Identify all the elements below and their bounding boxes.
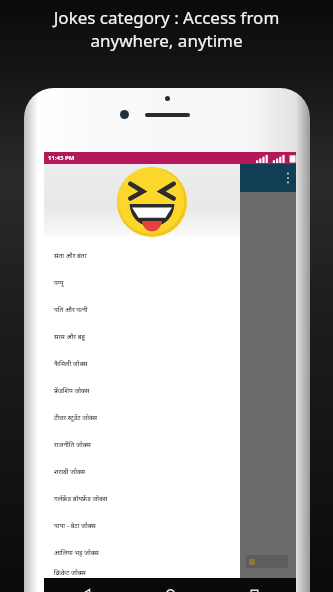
staticText: राजनीति जोक्स bbox=[54, 440, 91, 449]
button[interactable]: शराबी जोक्स bbox=[44, 458, 240, 485]
button[interactable]: पापा - बेटा जोक्स bbox=[44, 512, 240, 539]
button[interactable]: संता और बंता bbox=[44, 242, 240, 269]
staticText: शराबी जोक्स bbox=[54, 467, 86, 476]
staticText: टीचर स्टूडेंट जोक्स bbox=[54, 413, 98, 422]
button[interactable]: पति और पत्नी bbox=[44, 296, 240, 323]
button[interactable]: फैमिली जोक्स bbox=[44, 350, 240, 377]
staticText: 11:43 PM bbox=[48, 154, 75, 162]
staticText: पापा - बेटा जोक्स bbox=[54, 521, 96, 530]
button[interactable]: गर्लफ्रेंड बॉयफ्रेंड जोक्स bbox=[44, 485, 240, 512]
button[interactable]: फ्रेंडशिप जोक्स bbox=[44, 377, 240, 404]
staticText: सास और बहू bbox=[54, 332, 86, 341]
button[interactable]: Back bbox=[44, 578, 128, 592]
staticText: फ्रेंडशिप जोक्स bbox=[54, 386, 90, 395]
button[interactable]: Recents bbox=[212, 578, 296, 592]
staticText: गर्लफ्रेंड बॉयफ्रेंड जोक्स bbox=[54, 494, 108, 503]
staticText: आलिया भट्ट जोक्स bbox=[54, 548, 99, 557]
button[interactable]: क्रिकेट जोक्स bbox=[44, 566, 240, 578]
button[interactable]: राजनीति जोक्स bbox=[44, 431, 240, 458]
button[interactable]: पप्पू bbox=[44, 269, 240, 296]
staticText: क्रिकेट जोक्स bbox=[54, 568, 86, 577]
button[interactable]: More options bbox=[286, 171, 290, 185]
button[interactable]: Advertisement bbox=[246, 555, 288, 568]
staticText: फैमिली जोक्स bbox=[54, 359, 88, 368]
button[interactable]: Home bbox=[128, 578, 212, 592]
staticText: पति और पत्नी bbox=[54, 305, 88, 314]
button[interactable]: आलिया भट्ट जोक्स bbox=[44, 539, 240, 566]
staticText: संता और बंता bbox=[54, 251, 87, 260]
button[interactable]: टीचर स्टूडेंट जोक्स bbox=[44, 404, 240, 431]
button[interactable]: सास और बहू bbox=[44, 323, 240, 350]
staticText: Jokes category : Access from anywhere, a… bbox=[14, 6, 319, 52]
staticText: पप्पू bbox=[54, 278, 64, 287]
